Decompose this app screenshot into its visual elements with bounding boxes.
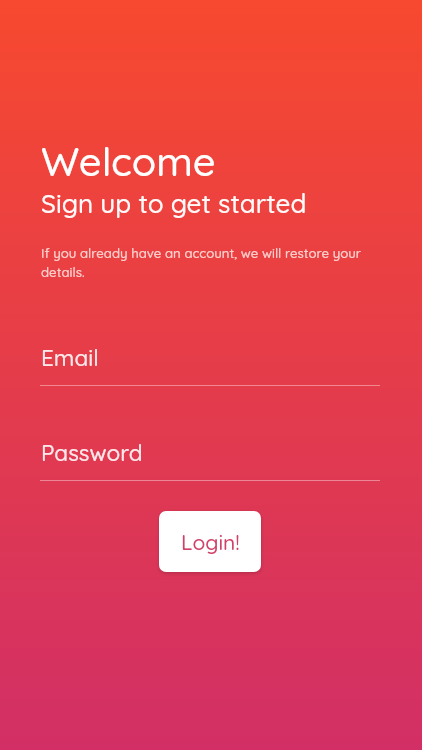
staticText: Sign up to get started: [41, 187, 307, 220]
staticText: Welcome: [41, 136, 216, 186]
staticText: If you already have an account, we will …: [41, 245, 367, 280]
button[interactable]: Password: [40, 435, 380, 481]
button[interactable]: Login!: [159, 511, 261, 572]
staticText: Email: [41, 343, 99, 371]
staticText: Login!: [181, 529, 240, 555]
button[interactable]: Email: [40, 340, 380, 386]
staticText: Password: [41, 438, 143, 466]
